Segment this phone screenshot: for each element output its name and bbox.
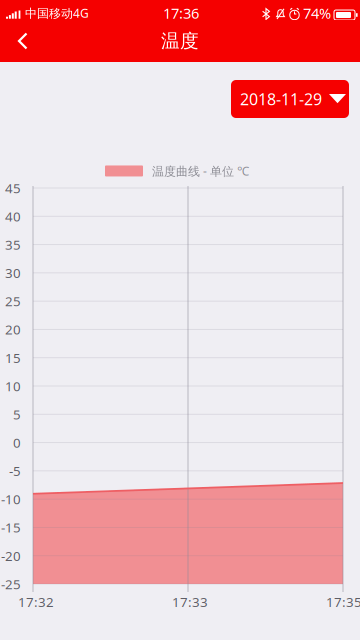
button[interactable]: Back bbox=[0, 20, 40, 62]
staticText: 45 bbox=[5, 179, 21, 197]
staticText: 温度曲线 - 单位 ℃ bbox=[152, 163, 249, 179]
staticText: 2018-11-29 bbox=[240, 88, 322, 110]
staticText: 5 bbox=[13, 405, 21, 423]
staticText: -25 bbox=[1, 575, 21, 593]
staticText: 30 bbox=[5, 264, 21, 282]
staticText: -20 bbox=[1, 547, 21, 565]
staticText: 中国移动4G bbox=[25, 5, 89, 21]
staticText: 温度 bbox=[161, 29, 199, 52]
staticText: 0 bbox=[13, 434, 21, 451]
staticText: 17:33 bbox=[172, 593, 208, 611]
staticText: 17:35 bbox=[326, 593, 360, 611]
button[interactable]: 2018-11-29 bbox=[231, 80, 349, 118]
staticText: -15 bbox=[1, 519, 21, 536]
staticText: 17:32 bbox=[18, 593, 54, 611]
staticText: 10 bbox=[5, 377, 21, 395]
staticText: 20 bbox=[5, 321, 21, 338]
staticText: -10 bbox=[1, 490, 21, 508]
staticText: 35 bbox=[5, 236, 21, 253]
staticText: 40 bbox=[5, 207, 21, 225]
staticText: 15 bbox=[5, 349, 21, 367]
staticText: -5 bbox=[9, 462, 21, 480]
staticText: 25 bbox=[5, 292, 21, 310]
staticText: 17:36 bbox=[163, 3, 199, 23]
staticText: 74% bbox=[303, 3, 331, 23]
